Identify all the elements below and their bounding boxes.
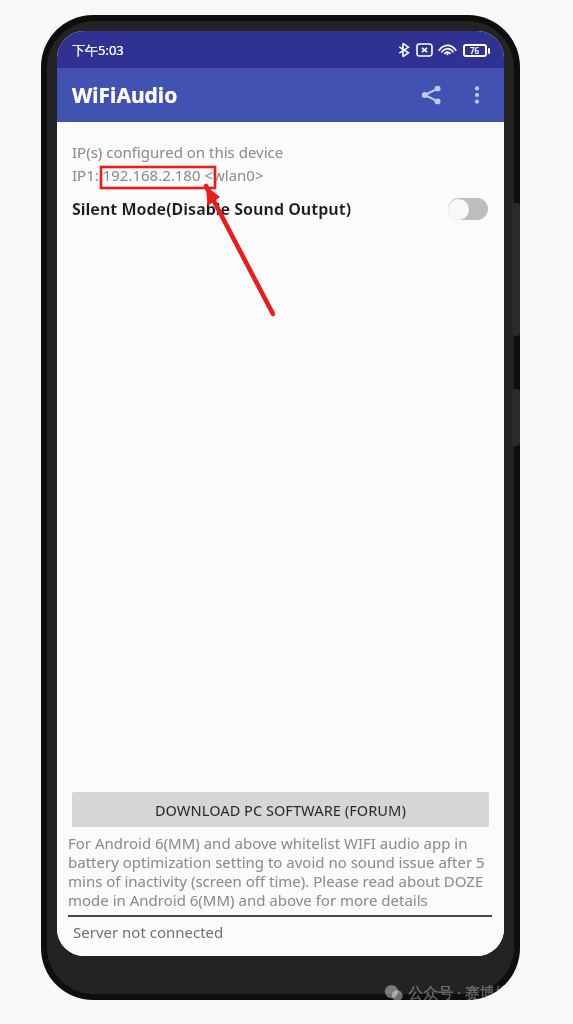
staticText: IP1: 192.168.2.180 <wlan0> — [72, 165, 264, 185]
staticText: IP(s) configured on this device — [72, 142, 284, 162]
staticText: DOWNLOAD PC SOFTWARE (FORUM) — [155, 800, 406, 820]
staticText: Silent Mode(Disable Sound Output) — [72, 198, 352, 220]
staticText: Server not connected — [73, 922, 224, 942]
button[interactable]: DOWNLOAD PC SOFTWARE (FORUM) — [72, 792, 489, 827]
staticText: 公众号 · 赛博摸鱼 — [408, 982, 525, 1002]
button[interactable]: Silent Mode(Disable Sound Output) — [57, 189, 504, 229]
staticText: WiFiAudio — [72, 81, 178, 110]
button[interactable]: More options — [454, 72, 500, 118]
staticText: 76 — [470, 45, 480, 56]
button[interactable]: Share — [408, 72, 454, 118]
staticText: For Android 6(MM) and above whitelist WI… — [68, 833, 492, 911]
staticText: 下午5:03 — [72, 41, 124, 59]
